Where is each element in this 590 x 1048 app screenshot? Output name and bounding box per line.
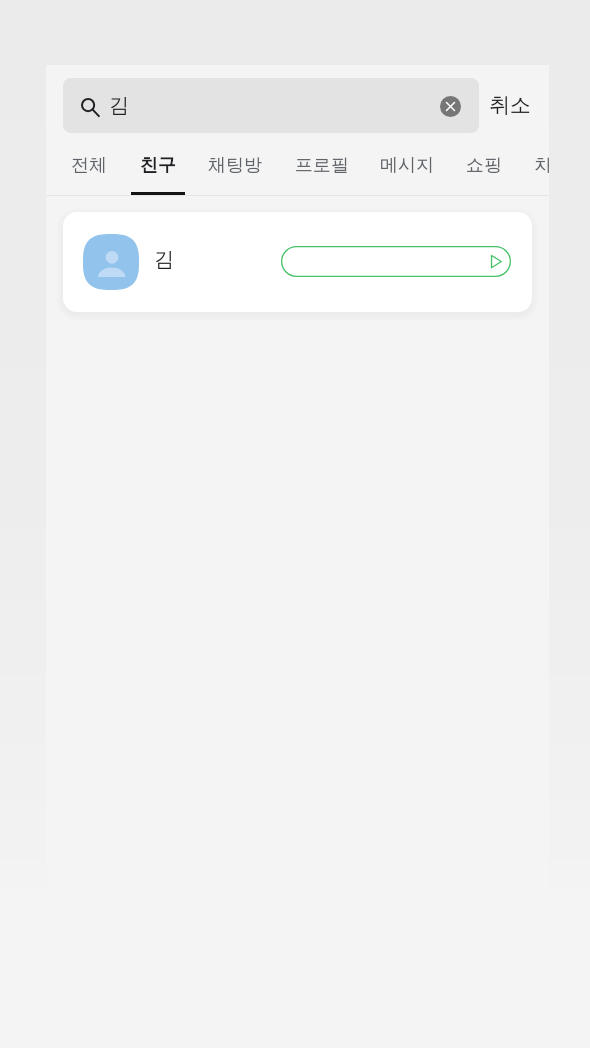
- staticText: 차단: [534, 154, 549, 177]
- button[interactable]: 차단: [518, 154, 549, 210]
- staticText: 프로필: [295, 154, 349, 177]
- button[interactable]: 전체: [54, 154, 123, 210]
- button[interactable]: 취소: [479, 78, 543, 133]
- button[interactable]: 김: [63, 212, 532, 312]
- staticText: 쇼핑: [466, 154, 502, 177]
- staticText: 친구: [140, 154, 176, 177]
- staticText: 채팅방: [208, 154, 262, 177]
- staticText: 김: [109, 93, 129, 118]
- staticText: 전체: [71, 154, 107, 177]
- button[interactable]: Send message: [281, 246, 511, 277]
- button[interactable]: 김: [63, 78, 479, 133]
- button[interactable]: 채팅방: [194, 154, 276, 210]
- button[interactable]: Clear search text: [431, 87, 469, 125]
- staticText: 김: [154, 247, 174, 272]
- button[interactable]: 친구: [121, 154, 194, 210]
- button[interactable]: 쇼핑: [447, 154, 520, 210]
- staticText: 취소: [489, 92, 531, 118]
- button[interactable]: 프로필: [279, 154, 364, 210]
- button[interactable]: 메시지: [366, 154, 447, 210]
- staticText: 메시지: [380, 154, 434, 177]
